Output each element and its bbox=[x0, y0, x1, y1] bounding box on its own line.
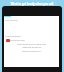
staticText: Lorem ipsum dolor sit amet cons adipisci… bbox=[5, 43, 58, 48]
staticText: What to get handy when you call bbox=[0, 2, 64, 6]
staticText: tempor incididunt ut bbox=[5, 50, 58, 53]
staticText: Your service bbox=[5, 19, 18, 22]
staticText: 0000 0000 0000 bbox=[10, 39, 25, 42]
staticText: Account number bbox=[5, 35, 21, 38]
